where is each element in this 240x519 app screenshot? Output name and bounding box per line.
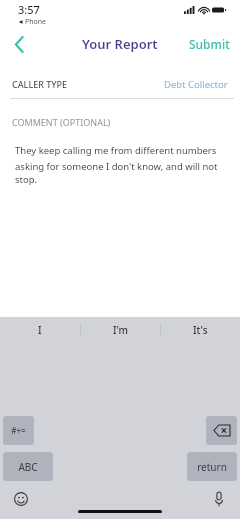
staticText: Phone	[25, 17, 47, 27]
button[interactable]: CALLER TYPE	[0, 73, 240, 95]
button[interactable]: It's	[161, 317, 240, 343]
staticText: return	[197, 460, 227, 474]
staticText: They keep calling me from different numb…	[15, 144, 217, 157]
staticText: #+=	[11, 425, 26, 436]
staticText: CALLER TYPE	[12, 78, 68, 90]
button[interactable]: Submit	[189, 36, 230, 52]
button[interactable]: #+=	[3, 416, 34, 445]
staticText: Debt Collector	[164, 78, 228, 91]
button[interactable]: Back	[6, 31, 32, 57]
staticText: ABC	[18, 460, 38, 474]
button[interactable]: Dictation	[210, 490, 228, 508]
staticText: Your Report	[82, 35, 158, 53]
button[interactable]: Emoji	[12, 490, 30, 508]
button[interactable]: return	[187, 452, 237, 481]
staticText: asking for someone I don't know, and wil…	[15, 160, 232, 186]
staticText: Submit	[189, 36, 230, 52]
staticText: I	[38, 323, 42, 337]
staticText: It's	[193, 323, 208, 337]
button[interactable]: ABC	[3, 452, 53, 481]
staticText: COMMENT (OPTIONAL)	[12, 116, 111, 128]
button[interactable]: I'm	[81, 317, 160, 343]
button[interactable]: I	[0, 317, 80, 343]
staticText: I'm	[113, 323, 129, 337]
staticText: 3:57	[18, 2, 40, 17]
button[interactable]: Backspace	[206, 416, 237, 445]
